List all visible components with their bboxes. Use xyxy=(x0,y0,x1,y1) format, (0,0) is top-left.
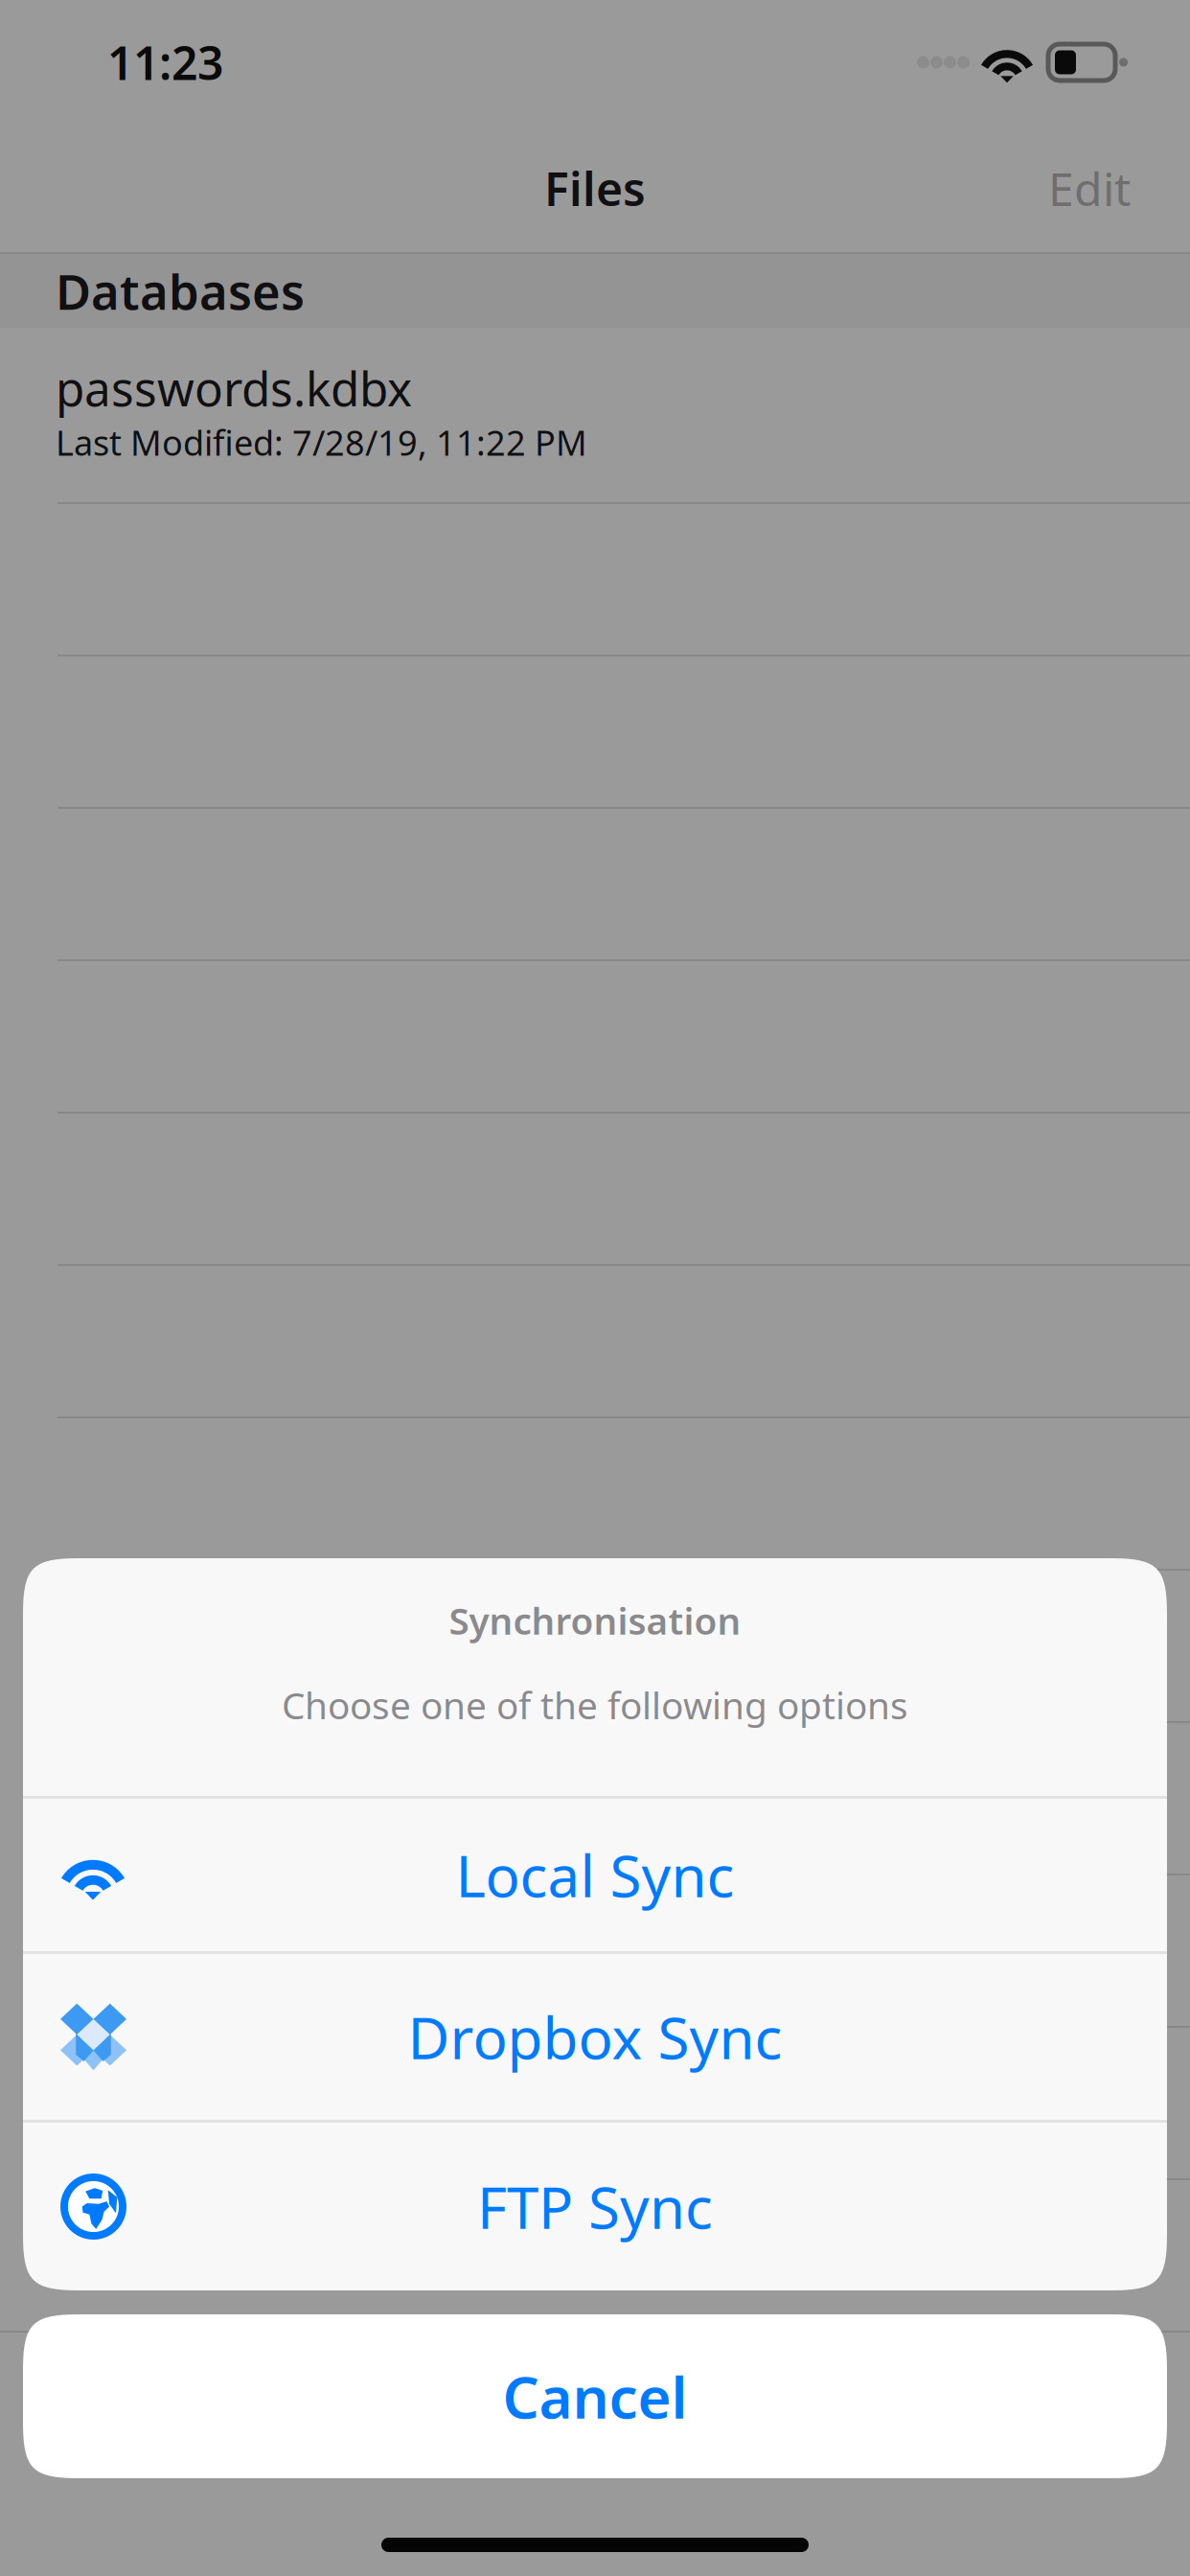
button[interactable]: FTP Sync xyxy=(23,2123,1167,2290)
staticText: Edit xyxy=(1048,158,1131,219)
button[interactable]: Dropbox Sync xyxy=(23,1954,1167,2120)
staticText: Last Modified: 7/28/19, 11:22 PM xyxy=(56,419,587,465)
button[interactable]: passwords.kdbx xyxy=(0,328,1190,504)
staticText: Files xyxy=(544,158,646,219)
button[interactable]: Cancel xyxy=(23,2314,1167,2478)
staticText: passwords.kdbx xyxy=(56,356,412,419)
staticText: Synchronisation xyxy=(449,1596,741,1645)
staticText: Choose one of the following options xyxy=(282,1680,908,1729)
staticText: Cancel xyxy=(503,2358,687,2435)
staticText: 11:23 xyxy=(107,32,223,93)
staticText: FTP Sync xyxy=(477,2168,713,2245)
staticText: Dropbox Sync xyxy=(408,1999,782,2075)
button[interactable]: Edit xyxy=(1031,139,1148,238)
button[interactable]: Local Sync xyxy=(23,1799,1167,1951)
staticText: Databases xyxy=(56,259,305,323)
staticText: Local Sync xyxy=(456,1837,734,1913)
